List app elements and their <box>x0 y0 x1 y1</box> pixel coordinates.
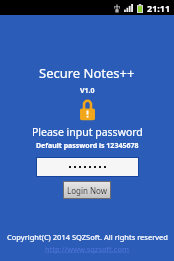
staticText: Secure Notes++ <box>39 64 135 82</box>
button[interactable]: Password field <box>37 158 138 176</box>
staticText: Please input password <box>32 125 143 139</box>
staticText: V1.0 <box>80 86 95 96</box>
button[interactable]: http://www.sqzsoft.com <box>45 244 129 254</box>
staticText: 21:11 <box>147 2 171 14</box>
other: Locked <box>79 100 96 121</box>
staticText: Login Now <box>67 185 108 196</box>
staticText: Default password is 12345678 <box>36 141 139 151</box>
button[interactable]: Login Now <box>64 182 110 198</box>
staticText: Copyright(C) 2014 SQZSoft. All rights re… <box>7 232 168 242</box>
staticText: http://www.sqzsoft.com <box>45 244 129 254</box>
